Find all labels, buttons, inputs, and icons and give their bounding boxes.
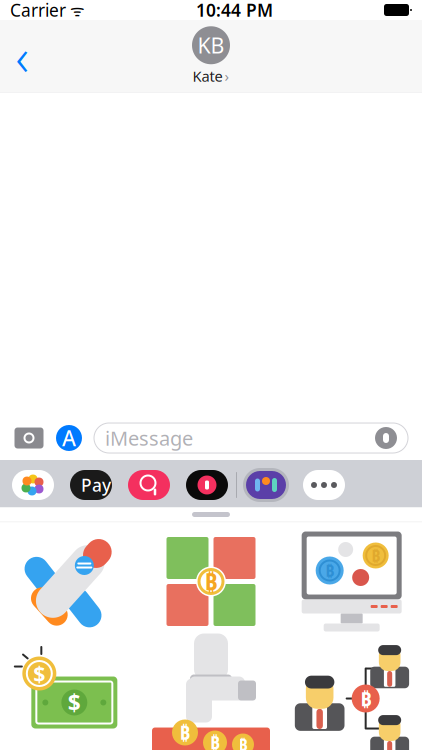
button[interactable]: App Store <box>56 424 82 452</box>
staticText: ₿ <box>371 545 380 566</box>
button[interactable]: More apps <box>295 463 353 507</box>
button[interactable]: Camera <box>14 425 44 451</box>
staticText: ₿ <box>210 731 220 750</box>
button[interactable]: Photos <box>4 463 62 507</box>
button[interactable]: Crypto Stickers <box>237 463 295 507</box>
staticText: 10:44 PM <box>196 0 273 21</box>
staticText: ₿ <box>179 720 190 745</box>
staticText: ₿ <box>360 685 371 712</box>
button[interactable]: Back <box>0 34 44 78</box>
button[interactable]: Rocket sticker <box>0 526 141 636</box>
button[interactable]: Fitness <box>178 463 236 507</box>
staticText: ₿ <box>325 560 334 581</box>
staticText: Kate <box>192 66 222 86</box>
button[interactable]: KB <box>192 26 230 86</box>
staticText: Carrier <box>10 0 66 21</box>
staticText: ₿ <box>238 734 247 750</box>
button[interactable]: Apple Pay <box>62 463 120 507</box>
staticText: $ <box>68 687 81 717</box>
staticText: iMessage <box>105 425 193 451</box>
button[interactable]: Crypto monitor sticker <box>281 526 422 636</box>
button[interactable]: Search <box>120 463 178 507</box>
button[interactable]: Money sticker <box>0 642 141 750</box>
staticText: ‹ <box>15 22 28 90</box>
staticText: ᯤ <box>66 0 85 21</box>
staticText: $ <box>33 659 45 688</box>
button[interactable]: Bitcoin circuit sticker <box>141 526 281 636</box>
button[interactable]: Bitcoin faucet sticker <box>141 642 281 750</box>
staticText: KB <box>197 31 224 59</box>
staticText: ₿ <box>204 566 217 596</box>
staticText: Pay <box>81 473 111 496</box>
staticText: › <box>224 66 229 86</box>
staticText: A <box>62 424 76 452</box>
button[interactable]: Bitcoin network sticker <box>281 642 422 750</box>
